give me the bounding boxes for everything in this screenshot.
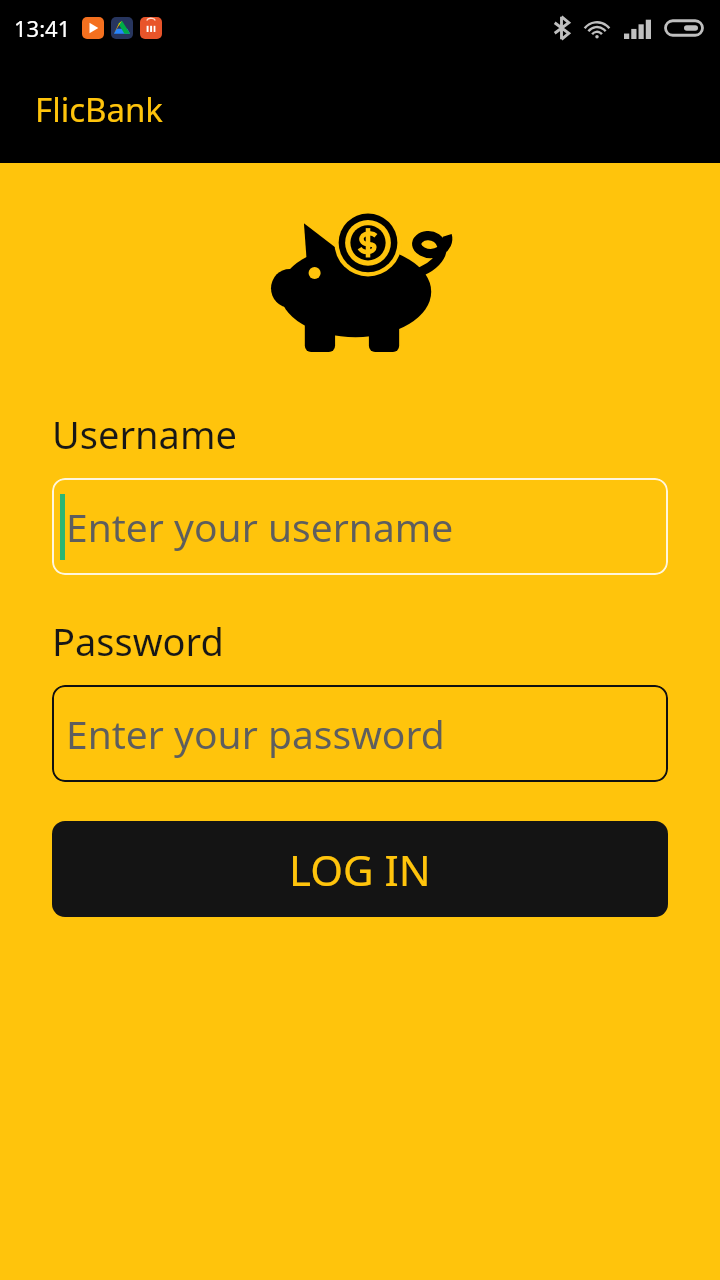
staticText: 13:41	[14, 13, 71, 43]
button[interactable]: Password input field	[52, 685, 668, 782]
button[interactable]: Username input field	[52, 478, 668, 575]
staticText: Enter your password	[66, 707, 445, 760]
staticText: LOG IN	[289, 841, 431, 898]
staticText: Username	[52, 408, 237, 460]
staticText: Enter your username	[66, 500, 454, 553]
staticText: Password	[52, 615, 224, 667]
staticText: FlicBank	[35, 87, 163, 132]
button[interactable]: LOG IN	[52, 821, 668, 917]
